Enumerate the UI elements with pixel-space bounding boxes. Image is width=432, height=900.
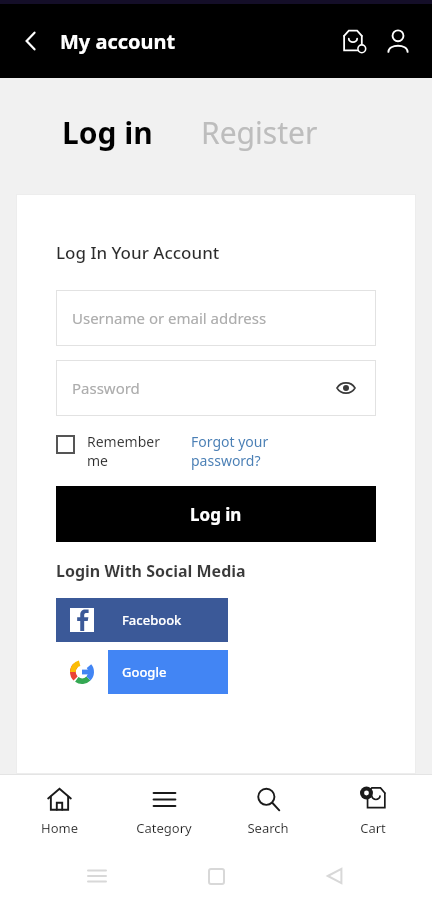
button[interactable]: Account <box>376 19 420 63</box>
button[interactable]: Remember me <box>56 432 179 470</box>
staticText: Search <box>247 819 289 837</box>
button[interactable]: Register <box>201 106 318 159</box>
staticText: Facebook <box>122 611 182 629</box>
staticText: Login With Social Media <box>56 560 246 582</box>
button[interactable]: Back <box>313 854 357 898</box>
staticText: Home <box>41 819 78 837</box>
button[interactable]: Log in <box>62 106 153 159</box>
staticText: Log In Your Account <box>56 241 220 264</box>
button[interactable]: Category <box>118 780 210 843</box>
button[interactable]: Forgot your password? <box>191 432 291 470</box>
button[interactable]: Cart <box>332 19 376 63</box>
button[interactable]: Log in <box>56 486 376 542</box>
button[interactable]: Cart <box>327 780 419 843</box>
staticText: Log in <box>190 503 242 526</box>
staticText: Forgot your password? <box>191 432 291 470</box>
staticText: Log in <box>62 112 153 153</box>
button[interactable]: Show password <box>332 374 360 402</box>
staticText: Password <box>72 378 140 398</box>
staticText: Username or email address <box>72 308 267 328</box>
button[interactable]: Back <box>8 18 54 64</box>
button[interactable]: Facebook <box>56 598 228 642</box>
button[interactable]: Home <box>13 780 105 843</box>
button[interactable]: Google <box>56 650 228 694</box>
button[interactable]: Password <box>56 360 376 416</box>
button[interactable]: Search <box>222 780 314 843</box>
button[interactable]: Home <box>194 854 238 898</box>
staticText: Cart <box>360 819 386 837</box>
button[interactable]: Username or email address <box>56 290 376 346</box>
button[interactable]: Recent apps <box>75 854 119 898</box>
staticText: Google <box>122 663 167 681</box>
staticText: Register <box>201 112 318 153</box>
staticText: Category <box>136 819 192 837</box>
staticText: Remember me <box>87 432 179 470</box>
staticText: My account <box>60 28 176 55</box>
